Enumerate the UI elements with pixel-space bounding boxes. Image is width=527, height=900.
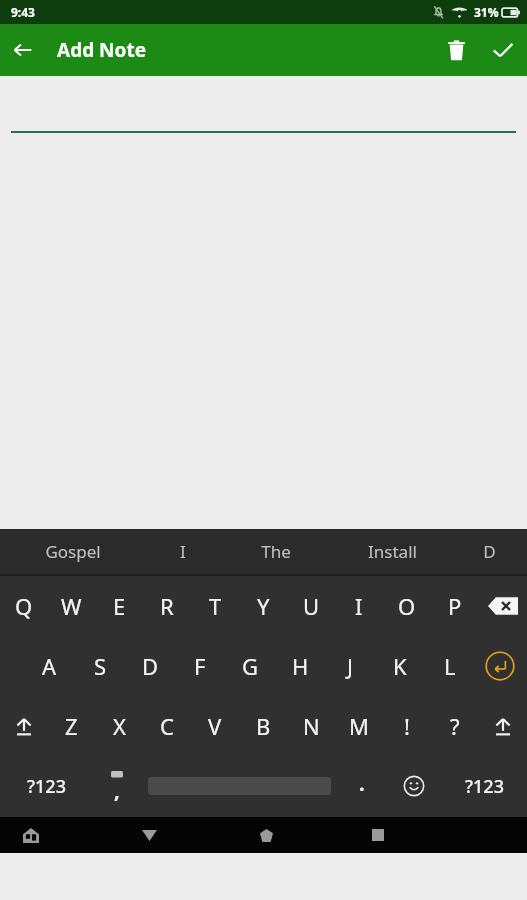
button[interactable]: G xyxy=(225,636,275,696)
staticText: 9:43 xyxy=(11,4,35,20)
button[interactable]: C xyxy=(143,696,191,756)
button[interactable]: X xyxy=(95,696,143,756)
button[interactable]: Recent apps xyxy=(359,817,397,853)
button[interactable]: L xyxy=(425,636,475,696)
staticText: ?123 xyxy=(465,774,504,799)
button[interactable]: Gospel xyxy=(0,529,145,574)
staticText: I xyxy=(355,591,363,621)
button[interactable]: Comma xyxy=(92,756,142,816)
button[interactable]: V xyxy=(191,696,239,756)
staticText: ? xyxy=(450,711,460,741)
staticText: Y xyxy=(257,591,270,621)
staticText: B xyxy=(256,711,271,741)
button[interactable]: Backspace xyxy=(479,576,527,636)
staticText: Gospel xyxy=(45,540,101,563)
button[interactable]: T xyxy=(191,576,239,636)
button[interactable]: ?123 xyxy=(0,756,92,816)
staticText: Q xyxy=(15,591,33,621)
button[interactable]: A xyxy=(24,636,75,696)
button[interactable]: ?123 xyxy=(441,756,527,816)
button[interactable]: M xyxy=(335,696,383,756)
staticText: R xyxy=(160,591,174,621)
button[interactable]: Y xyxy=(239,576,287,636)
button[interactable]: Back xyxy=(0,27,46,73)
staticText: D xyxy=(483,540,496,563)
staticText: W xyxy=(61,591,82,621)
button[interactable]: W xyxy=(47,576,95,636)
staticText: L xyxy=(444,651,456,681)
button[interactable]: B xyxy=(239,696,287,756)
staticText: H xyxy=(292,651,309,681)
staticText: K xyxy=(393,651,407,681)
staticText: Install xyxy=(368,540,417,563)
button[interactable]: ? xyxy=(431,696,479,756)
staticText: X xyxy=(113,711,126,741)
button[interactable]: E xyxy=(95,576,143,636)
button[interactable]: Keyboard switcher xyxy=(14,818,48,852)
staticText: O xyxy=(398,591,416,621)
button[interactable]: Install xyxy=(332,529,452,574)
staticText: M xyxy=(349,711,369,741)
button[interactable]: U xyxy=(287,576,335,636)
button[interactable]: Shift xyxy=(479,696,527,756)
staticText: G xyxy=(242,651,259,681)
staticText: . xyxy=(359,770,365,797)
staticText: E xyxy=(113,591,126,621)
button[interactable]: ! xyxy=(383,696,431,756)
button[interactable]: S xyxy=(75,636,125,696)
staticText: V xyxy=(208,711,222,741)
button[interactable]: Enter xyxy=(475,636,525,696)
staticText: N xyxy=(303,711,320,741)
button[interactable]: J xyxy=(325,636,375,696)
button[interactable]: D xyxy=(452,529,527,574)
button[interactable]: N xyxy=(287,696,335,756)
button[interactable]: Home xyxy=(247,817,285,853)
staticText: 31% xyxy=(474,4,499,20)
staticText: Z xyxy=(65,711,78,741)
button[interactable]: Z xyxy=(47,696,95,756)
button[interactable]: H xyxy=(275,636,325,696)
staticText: J xyxy=(347,651,354,681)
button[interactable]: Back xyxy=(130,817,168,853)
staticText: F xyxy=(194,651,206,681)
button[interactable]: Period xyxy=(337,756,387,816)
staticText: C xyxy=(160,711,174,741)
staticText: T xyxy=(209,591,222,621)
staticText: I xyxy=(180,540,186,563)
button[interactable]: Space xyxy=(142,756,337,816)
button[interactable]: I xyxy=(145,529,220,574)
staticText: S xyxy=(94,651,107,681)
staticText: Add Note xyxy=(57,37,147,63)
button[interactable]: The xyxy=(220,529,332,574)
staticText: ?123 xyxy=(27,774,66,799)
button[interactable]: D xyxy=(125,636,175,696)
staticText: U xyxy=(303,591,320,621)
staticText: D xyxy=(142,651,159,681)
staticText: ! xyxy=(404,711,410,741)
button[interactable]: Delete xyxy=(433,27,479,73)
button[interactable]: P xyxy=(431,576,479,636)
button[interactable]: I xyxy=(335,576,383,636)
staticText: The xyxy=(261,540,291,563)
staticText: , xyxy=(114,777,120,804)
button[interactable]: R xyxy=(143,576,191,636)
staticText: A xyxy=(42,651,57,681)
button[interactable]: Shift xyxy=(0,696,47,756)
button[interactable]: F xyxy=(175,636,225,696)
staticText: P xyxy=(448,591,462,621)
button[interactable]: O xyxy=(383,576,431,636)
button[interactable]: Emoji xyxy=(387,756,441,816)
button[interactable]: Q xyxy=(0,576,47,636)
button[interactable]: Save xyxy=(479,26,527,74)
button[interactable]: K xyxy=(375,636,425,696)
